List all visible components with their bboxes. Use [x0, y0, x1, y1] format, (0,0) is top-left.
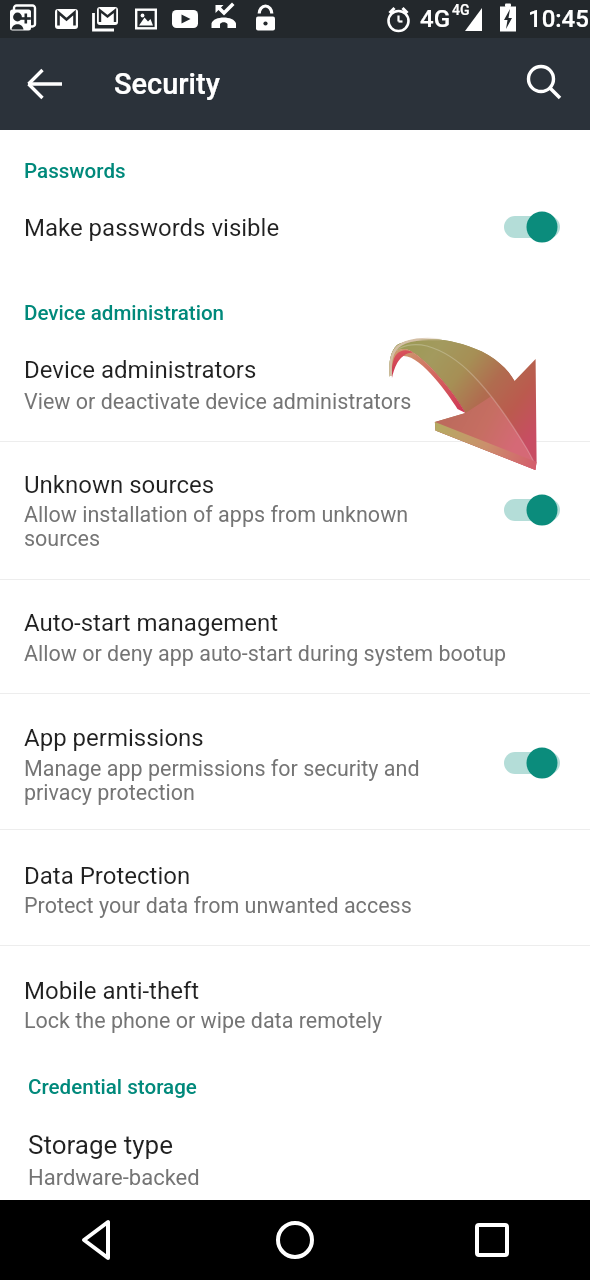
- staticText: 4G: [420, 5, 450, 33]
- button[interactable]: Recent apps: [462, 1210, 522, 1270]
- staticText: Unknown sources: [24, 471, 215, 499]
- staticText: Device administration: [24, 301, 225, 325]
- staticText: Hardware-backed: [28, 1165, 200, 1191]
- staticText: Security: [114, 67, 220, 101]
- staticText: Credential storage: [28, 1075, 197, 1099]
- staticText: Auto-start management: [24, 609, 279, 637]
- staticText: Storage type: [28, 1130, 173, 1160]
- button[interactable]: Toggle: [496, 203, 572, 251]
- staticText: Mobile anti-theft: [24, 977, 200, 1005]
- staticText: Manage app permissions for security and …: [24, 756, 420, 805]
- staticText: Device administrators: [24, 356, 257, 384]
- staticText: Allow installation of apps from unknown …: [24, 502, 409, 551]
- button[interactable]: Home: [265, 1210, 325, 1270]
- staticText: 10:45: [528, 5, 589, 33]
- staticText: Data Protection: [24, 862, 191, 890]
- staticText: Lock the phone or wipe data remotely: [24, 1008, 383, 1033]
- staticText: Passwords: [24, 159, 126, 183]
- staticText: 4G: [452, 2, 470, 18]
- staticText: Allow or deny app auto-start during syst…: [24, 641, 507, 666]
- button[interactable]: Toggle: [496, 486, 572, 534]
- button[interactable]: Back: [68, 1210, 128, 1270]
- staticText: Protect your data from unwanted access: [24, 893, 412, 918]
- button[interactable]: Toggle: [496, 739, 572, 787]
- button[interactable]: Search: [522, 61, 568, 107]
- button[interactable]: Navigate up: [20, 58, 72, 110]
- staticText: View or deactivate device administrators: [24, 389, 412, 414]
- staticText: App permissions: [24, 724, 204, 752]
- staticText: Make passwords visible: [24, 214, 280, 242]
